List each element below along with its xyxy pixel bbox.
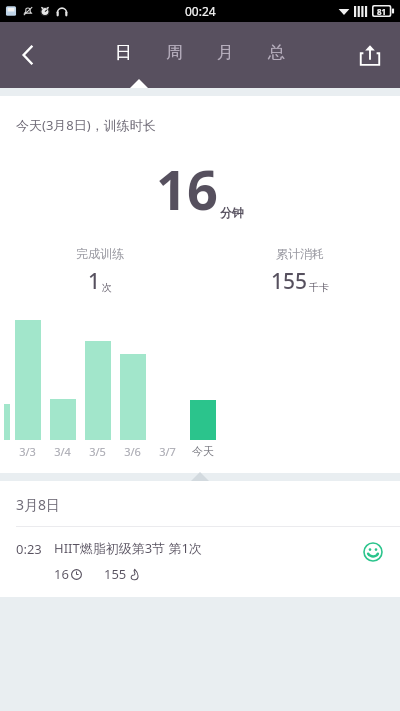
staticText: 3月8日 — [16, 495, 61, 514]
staticText: 155 — [271, 267, 308, 296]
staticText: 分钟 — [220, 205, 244, 220]
button[interactable]: Mood good — [360, 539, 386, 565]
button[interactable]: 日 — [109, 36, 138, 69]
button[interactable]: Share — [346, 31, 394, 79]
button[interactable]: 累计消耗 — [200, 246, 400, 296]
staticText: 总 — [268, 42, 285, 63]
staticText: 3/3 — [19, 444, 36, 459]
staticText: 00:24 — [185, 3, 216, 19]
staticText: 3/6 — [124, 444, 141, 459]
button[interactable]: 完成训练 — [0, 246, 200, 296]
staticText: 千卡 — [309, 281, 329, 294]
staticText: 3/4 — [54, 444, 71, 459]
button[interactable]: 0:23 — [0, 527, 400, 597]
staticText: HIIT燃脂初级第3节 第1次 — [54, 539, 202, 557]
button[interactable]: 周 — [160, 36, 189, 69]
staticText: 81 — [377, 6, 387, 17]
staticText: 16 — [54, 565, 69, 583]
staticText: 累计消耗 — [276, 246, 324, 261]
staticText: 完成训练 — [76, 246, 124, 261]
staticText: 3/5 — [89, 444, 106, 459]
staticText: 16 — [156, 152, 218, 226]
button[interactable]: 月 — [211, 36, 240, 69]
staticText: 月 — [217, 42, 234, 63]
staticText: 155 — [104, 565, 127, 583]
staticText: 0:23 — [16, 540, 42, 558]
button[interactable]: Back — [4, 31, 52, 79]
button[interactable]: 总 — [262, 36, 291, 69]
staticText: 3/7 — [159, 444, 176, 459]
staticText: 1 — [88, 267, 101, 296]
staticText: 今天 — [192, 444, 214, 458]
staticText: 次 — [102, 281, 112, 294]
staticText: 周 — [166, 42, 183, 63]
staticText: 日 — [115, 42, 132, 63]
staticText: 今天(3月8日)，训练时长 — [16, 116, 156, 134]
